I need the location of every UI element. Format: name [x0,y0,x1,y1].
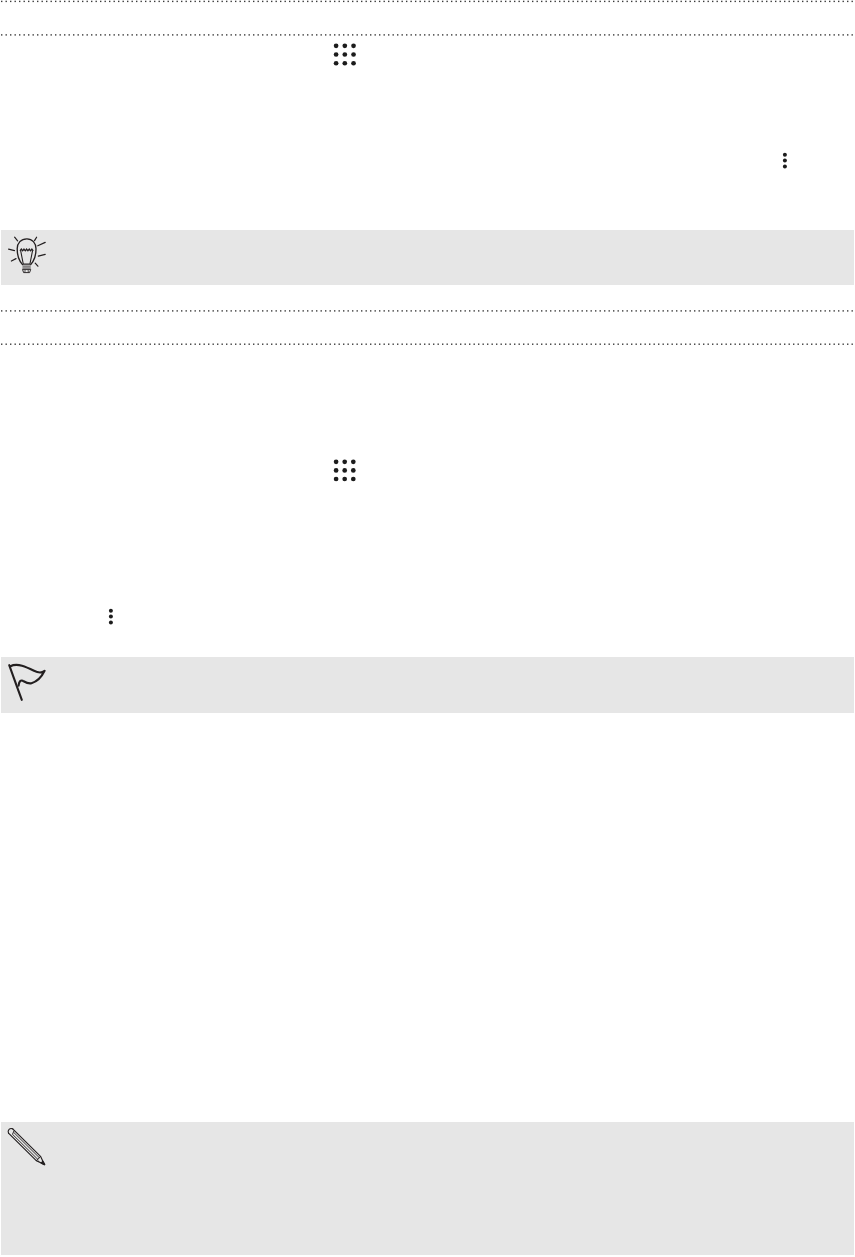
button[interactable]: All apps [330,40,362,72]
button[interactable] [1,1122,854,1255]
button[interactable]: More options [775,146,795,172]
button[interactable] [1,657,854,713]
button[interactable] [1,230,854,285]
button[interactable]: All apps [330,456,362,488]
button[interactable]: More options [101,602,121,628]
